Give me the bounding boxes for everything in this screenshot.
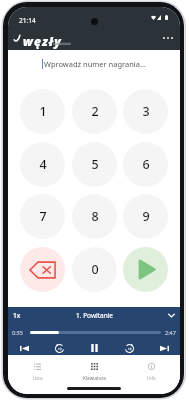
button[interactable]: 1x bbox=[13, 307, 175, 323]
button[interactable]: 6 bbox=[123, 142, 168, 187]
button[interactable]: Wprowadź numer nagrania… bbox=[8, 50, 180, 77]
staticText: węzły bbox=[23, 33, 62, 49]
staticText: Info bbox=[147, 375, 156, 381]
staticText: 4 bbox=[39, 156, 47, 173]
button[interactable]: 0 bbox=[72, 247, 117, 292]
staticText: 1. Powitanie bbox=[76, 311, 114, 320]
button[interactable]: Pause bbox=[85, 339, 103, 357]
button[interactable]: Replay 10 seconds bbox=[50, 339, 68, 357]
button[interactable]: 2 bbox=[72, 89, 117, 134]
staticText: 8 bbox=[91, 208, 99, 225]
staticText: 1 bbox=[39, 103, 47, 120]
button[interactable]: More options bbox=[156, 31, 180, 45]
button[interactable]: Klawiatura bbox=[66, 355, 123, 381]
button[interactable]: Backspace bbox=[20, 247, 65, 292]
staticText: 9 bbox=[142, 208, 150, 225]
button[interactable]: Previous bbox=[15, 339, 33, 357]
staticText: 6 bbox=[142, 156, 150, 173]
staticText: 2 bbox=[91, 103, 99, 120]
button[interactable]: 4 bbox=[20, 142, 65, 187]
button[interactable]: 5 bbox=[72, 142, 117, 187]
button[interactable]: Info bbox=[123, 355, 180, 381]
button[interactable]: 7 bbox=[20, 194, 65, 239]
other: Expand player bbox=[168, 313, 175, 318]
button[interactable]: 8 bbox=[72, 194, 117, 239]
button[interactable]: 3 bbox=[123, 89, 168, 134]
staticText: 7 bbox=[39, 208, 47, 225]
staticText: Wprowadź numer nagrania… bbox=[44, 59, 146, 69]
staticText: 0 bbox=[91, 261, 99, 278]
staticText: 0:35 bbox=[12, 329, 23, 336]
button[interactable]: Forward 10 seconds bbox=[120, 339, 138, 357]
staticText: Lista bbox=[32, 375, 43, 381]
staticText: 3 bbox=[142, 103, 150, 120]
button[interactable]: Lista bbox=[8, 355, 66, 381]
staticText: 1x bbox=[13, 311, 21, 320]
staticText: Klawiatura bbox=[83, 375, 106, 381]
button[interactable]: Next bbox=[155, 339, 173, 357]
button[interactable]: 9 bbox=[123, 194, 168, 239]
staticText: 5 bbox=[91, 156, 99, 173]
button[interactable]: 1 bbox=[20, 89, 65, 134]
button[interactable]: Play bbox=[123, 247, 168, 292]
staticText: 21:14 bbox=[19, 16, 36, 25]
staticText: 2:47 bbox=[165, 329, 176, 336]
